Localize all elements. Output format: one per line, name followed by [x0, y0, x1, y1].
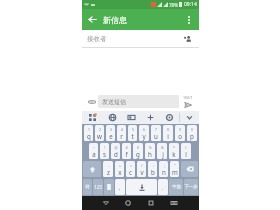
- button[interactable]: Send: [179, 95, 196, 109]
- button[interactable]: %: [145, 143, 155, 159]
- button[interactable]: Home: [117, 196, 139, 210]
- staticText: 发送短信: [102, 98, 126, 106]
- staticText: (: [185, 145, 187, 150]
- button[interactable]: -: [103, 161, 113, 177]
- staticText: $: [137, 145, 139, 150]
- staticText: y: [142, 132, 146, 140]
- staticText: c: [129, 168, 132, 176]
- staticText: 6: [143, 127, 145, 132]
- button[interactable]: Backspace: [181, 161, 198, 177]
- staticText: 符: [85, 184, 90, 190]
- staticText: *: [173, 145, 175, 150]
- staticText: n: [162, 168, 166, 176]
- button[interactable]: Attach: [85, 95, 98, 108]
- button[interactable]: 接收者: [82, 30, 199, 47]
- staticText: 78%: [169, 2, 178, 8]
- button[interactable]: Themes: [82, 111, 102, 124]
- button[interactable]: Add contact: [182, 33, 194, 45]
- staticText: s: [103, 150, 106, 158]
- button[interactable]: 7: [151, 125, 161, 141]
- button[interactable]: #: [122, 143, 131, 159]
- button[interactable]: 4: [117, 125, 126, 141]
- button[interactable]: ": [170, 161, 179, 177]
- button[interactable]: Space: [126, 179, 157, 195]
- staticText: 5: [132, 127, 134, 132]
- staticText: .: [162, 184, 164, 191]
- staticText: +: [119, 163, 121, 168]
- button[interactable]: 发送短信: [98, 95, 179, 108]
- button[interactable]: @: [111, 143, 120, 159]
- button[interactable]: 8: [163, 125, 173, 141]
- button[interactable]: (: [181, 143, 191, 159]
- button[interactable]: Back: [82, 9, 103, 30]
- staticText: !: [104, 145, 105, 150]
- button[interactable]: 2: [95, 125, 104, 141]
- staticText: @: [114, 145, 118, 150]
- button[interactable]: Screenshot: [162, 196, 185, 210]
- staticText: 160/1: [183, 95, 193, 100]
- staticText: ,: [119, 184, 121, 191]
- staticText: 新信息: [103, 15, 127, 25]
- staticText: ": [174, 163, 176, 168]
- staticText: i: [167, 132, 169, 140]
- button[interactable]: .: [158, 179, 168, 195]
- staticText: %: [149, 145, 152, 150]
- button[interactable]: !: [100, 143, 109, 159]
- button[interactable]: ,: [115, 179, 125, 195]
- button[interactable]: 中英: [169, 179, 183, 195]
- button[interactable]: Recents: [139, 196, 162, 210]
- button[interactable]: 5: [128, 125, 137, 141]
- staticText: 4: [121, 127, 123, 132]
- button[interactable]: Back: [95, 196, 117, 210]
- staticText: -: [108, 163, 110, 168]
- button[interactable]: 6: [139, 125, 149, 141]
- button[interactable]: 123: [93, 179, 103, 195]
- staticText: x: [118, 168, 122, 176]
- button[interactable]: &: [157, 143, 167, 159]
- button[interactable]: 0: [187, 125, 197, 141]
- button[interactable]: Handwriting: [122, 111, 141, 124]
- button[interactable]: Settings: [160, 111, 179, 124]
- staticText: h: [148, 150, 152, 158]
- staticText: 0: [191, 127, 193, 132]
- staticText: ;: [164, 163, 165, 168]
- staticText: j: [162, 150, 164, 158]
- button[interactable]: *: [169, 143, 179, 159]
- button[interactable]: 符: [83, 179, 92, 195]
- staticText: w: [97, 132, 102, 140]
- staticText: z: [107, 168, 110, 176]
- button[interactable]: ;: [159, 161, 168, 177]
- staticText: v: [140, 168, 144, 176]
- staticText: o: [178, 132, 182, 140]
- button[interactable]: 1: [84, 125, 93, 141]
- button[interactable]: Hide keyboard: [180, 111, 199, 124]
- staticText: 3: [110, 127, 112, 132]
- button[interactable]: $: [133, 143, 143, 159]
- button[interactable]: :: [148, 161, 157, 177]
- button[interactable]: More options: [178, 9, 199, 30]
- button[interactable]: 下一步: [184, 179, 198, 195]
- staticText: 9: [179, 127, 181, 132]
- button[interactable]: Voice input: [102, 111, 122, 124]
- staticText: 下一步: [184, 184, 198, 190]
- button[interactable]: Emoji: [104, 179, 114, 195]
- staticText: u: [154, 132, 158, 140]
- staticText: =: [130, 163, 132, 168]
- button[interactable]: 3: [106, 125, 115, 141]
- button[interactable]: ~: [89, 143, 98, 159]
- button[interactable]: 9: [175, 125, 185, 141]
- staticText: r: [120, 132, 123, 140]
- button[interactable]: +: [115, 161, 124, 177]
- staticText: 2: [99, 127, 101, 132]
- button[interactable]: Cursor move: [141, 111, 160, 124]
- button[interactable]: /: [137, 161, 146, 177]
- staticText: 09:14: [184, 1, 197, 8]
- staticText: 8: [167, 127, 169, 132]
- staticText: g: [136, 150, 140, 158]
- staticText: t: [131, 132, 134, 140]
- staticText: 123: [94, 184, 102, 190]
- staticText: e: [109, 132, 113, 140]
- button[interactable]: =: [126, 161, 135, 177]
- button[interactable]: Shift: [83, 161, 101, 177]
- staticText: q: [87, 132, 91, 140]
